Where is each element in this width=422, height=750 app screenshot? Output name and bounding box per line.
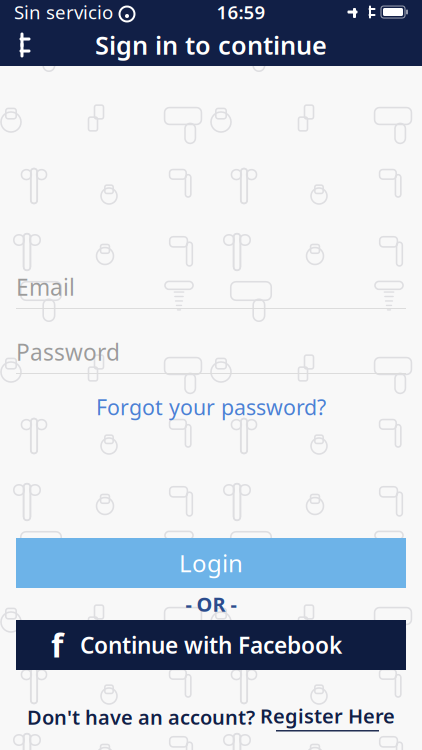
staticText: Password: [16, 337, 120, 367]
staticText: Register Here: [260, 702, 395, 729]
button[interactable]: Forgot your password?: [16, 394, 406, 420]
button[interactable]: f: [16, 620, 406, 670]
staticText: - OR -: [185, 591, 236, 617]
button[interactable]: Back: [0, 24, 44, 66]
staticText: 16:59: [216, 0, 265, 24]
staticText: Continue with Facebook: [80, 630, 342, 660]
staticText: Login: [179, 547, 243, 579]
staticText: Forgot your password?: [96, 393, 326, 421]
staticText: Email: [16, 272, 75, 302]
button[interactable]: Login: [16, 538, 406, 588]
staticText: f: [51, 624, 63, 666]
staticText: Sin servicio: [14, 0, 113, 24]
staticText: Don't have an account?: [27, 704, 255, 730]
staticText: Sign in to continue: [95, 28, 327, 62]
button[interactable]: Don't have an account?: [16, 702, 406, 732]
